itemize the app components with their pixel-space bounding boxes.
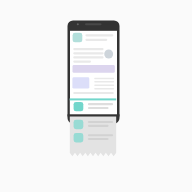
button[interactable]: Mobile receipt illustration — [0, 0, 192, 192]
